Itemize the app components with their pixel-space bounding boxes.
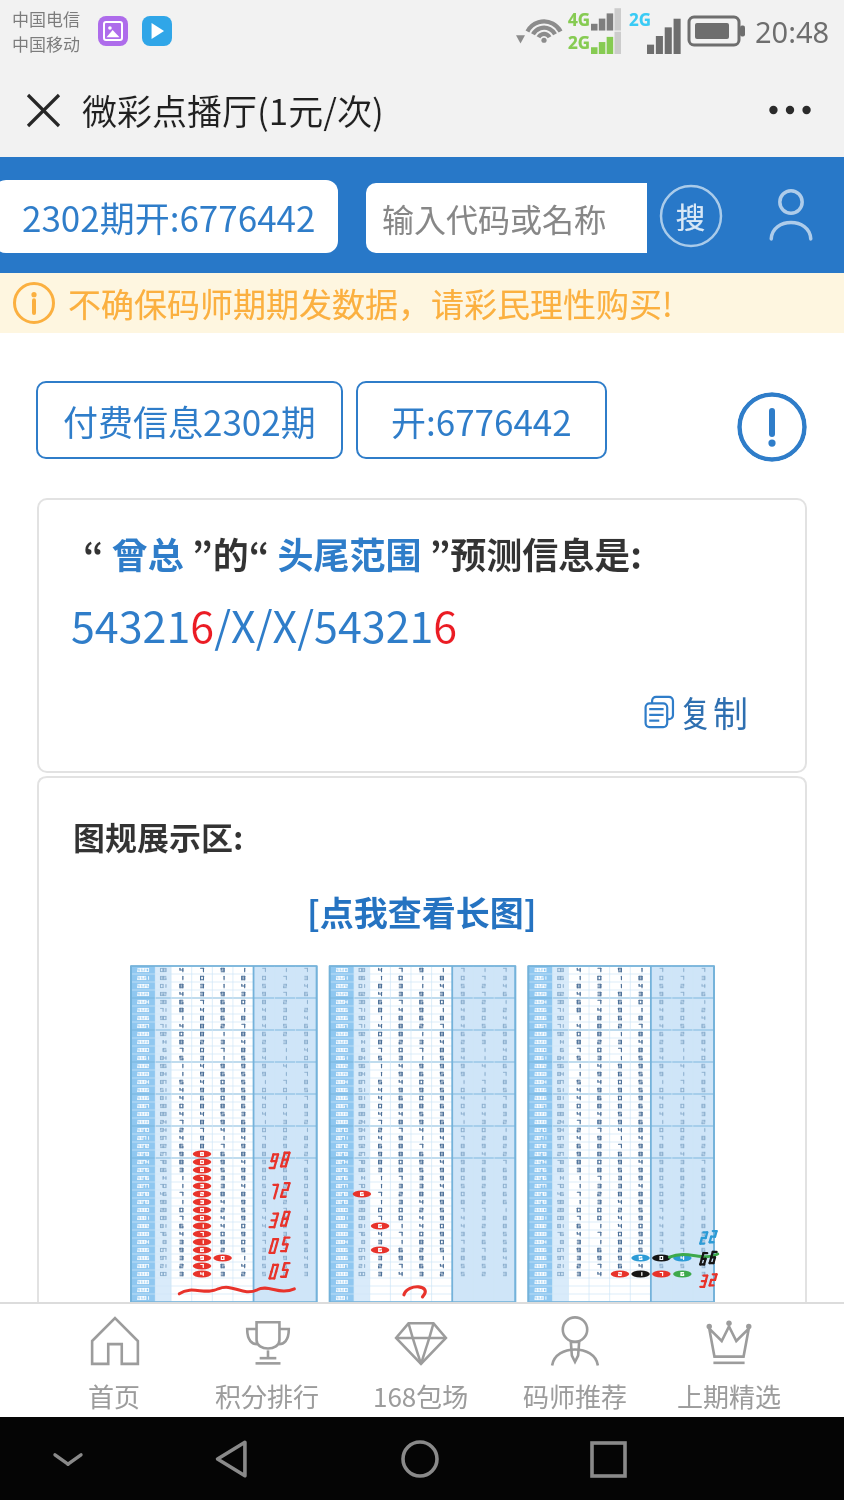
staticText: 输入代码或名称: [382, 195, 607, 241]
button[interactable]: 2302期开:6776442: [0, 180, 338, 253]
button[interactable]: 复制: [642, 686, 749, 737]
button[interactable]: 码师推荐: [498, 1312, 652, 1417]
staticText: 复制: [678, 686, 749, 737]
button[interactable]: [点我查看长图]: [307, 887, 537, 936]
staticText: 4G: [568, 8, 591, 31]
button[interactable]: 首页: [38, 1312, 191, 1417]
staticText: 搜: [676, 195, 706, 237]
staticText: 码师推荐: [523, 1377, 628, 1415]
button[interactable]: 积分排行: [191, 1312, 344, 1417]
button[interactable]: Hide keyboard: [43, 1434, 93, 1484]
button[interactable]: 搜: [659, 184, 723, 248]
staticText: 首页: [88, 1377, 141, 1415]
staticText: 中国电信: [12, 6, 80, 31]
button[interactable]: Back: [204, 1431, 260, 1487]
button[interactable]: Recent apps: [580, 1431, 636, 1487]
staticText: 2G: [629, 8, 652, 31]
staticText: 20:48: [755, 12, 830, 51]
button[interactable]: Account: [760, 184, 822, 246]
button[interactable]: More options: [760, 80, 820, 140]
staticText: 不确保码师期期发数据，请彩民理性购买!: [68, 279, 673, 327]
button[interactable]: Information: [737, 392, 807, 462]
staticText: 上期精选: [677, 1377, 782, 1415]
staticText: 168包场: [373, 1377, 469, 1415]
button[interactable]: Close: [16, 83, 70, 137]
button[interactable]: 输入代码或名称: [366, 183, 647, 253]
staticText: 开:6776442: [391, 395, 572, 446]
button[interactable]: 付费信息2302期: [36, 381, 343, 459]
button[interactable]: Home: [392, 1431, 448, 1487]
staticText: 积分排行: [215, 1377, 320, 1415]
staticText: 图规展示区:: [73, 813, 244, 859]
staticText: 2302期开:6776442: [22, 191, 316, 242]
staticText: 中国移动: [12, 31, 80, 56]
staticText: 543216/X/X/543216: [71, 593, 458, 655]
staticText: 付费信息2302期: [63, 395, 316, 446]
staticText: 2G: [568, 31, 591, 54]
button[interactable]: 168包场: [344, 1312, 498, 1417]
button[interactable]: 开:6776442: [356, 381, 607, 459]
staticText: “ 曾总 ”的“ 头尾范围 ”预测信息是:: [83, 527, 643, 579]
staticText: 微彩点播厅(1元/次): [82, 84, 384, 135]
button[interactable]: 上期精选: [652, 1312, 806, 1417]
